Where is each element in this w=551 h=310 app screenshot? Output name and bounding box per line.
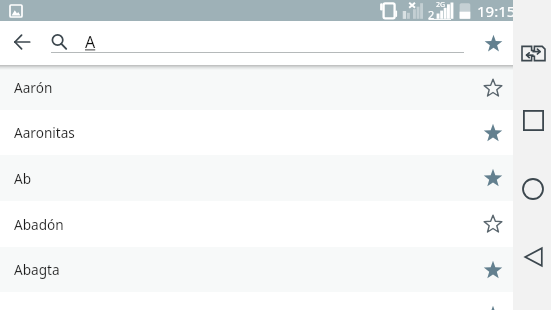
staticText: 19:15 (477, 1, 516, 21)
button[interactable]: Aarón (0, 65, 513, 110)
staticText: 2G (436, 0, 446, 10)
staticText: Abagta (14, 260, 60, 279)
button[interactable]: Favourite (473, 110, 513, 155)
button[interactable]: Navigate up (0, 21, 44, 65)
staticText: Abadón (14, 215, 64, 234)
button[interactable]: Favourite (473, 247, 513, 292)
button[interactable]: Recent apps (513, 101, 551, 139)
button[interactable]: Favourite (473, 201, 513, 247)
staticText: Aarón (14, 78, 53, 97)
button[interactable]: Abagta (0, 247, 513, 292)
button[interactable]: Favourite (473, 155, 513, 201)
button[interactable]: Ab (0, 155, 513, 201)
button[interactable]: Abadón (0, 201, 513, 247)
button[interactable]: Favourite (473, 65, 513, 110)
button[interactable]: Show favourites (471, 21, 515, 65)
button[interactable]: Aaronitas (0, 110, 513, 155)
staticText: Aaronitas (14, 123, 75, 142)
button[interactable]: Abana (0, 292, 513, 310)
button[interactable]: Split screen (513, 33, 551, 71)
staticText: Ab (14, 169, 32, 188)
button[interactable]: Back (513, 238, 551, 276)
staticText: A (85, 31, 96, 53)
button[interactable]: Favourite (473, 292, 513, 310)
staticText: 2 (428, 7, 435, 22)
button[interactable]: Home (513, 170, 551, 208)
